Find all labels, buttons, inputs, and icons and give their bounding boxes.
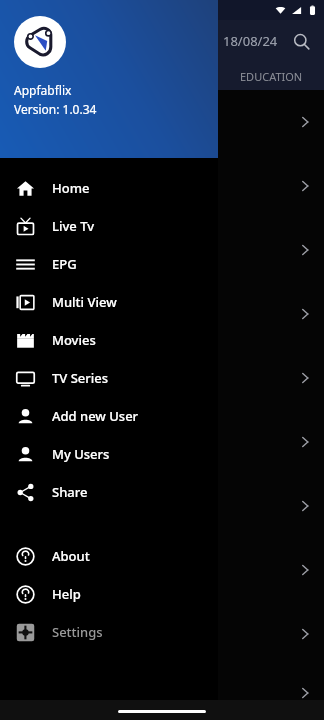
staticText: 3eme Rue TV (1080p) xyxy=(14,169,133,185)
staticText: Multi View xyxy=(52,293,117,311)
staticText: TV Series xyxy=(52,369,109,387)
button[interactable]: EDUCATION xyxy=(232,65,311,88)
staticText: About xyxy=(52,547,90,565)
staticText: BTN Français (576p) [Not 24/7] xyxy=(14,361,186,377)
staticText: 18/08/24 xyxy=(223,32,278,50)
button[interactable]: About xyxy=(0,537,218,575)
staticText: News xyxy=(14,574,40,588)
button[interactable]: For You TV (480p) xyxy=(0,538,324,602)
staticText: Movies xyxy=(52,331,96,349)
button[interactable]: AfricaNews Français (720p) xyxy=(0,282,324,346)
button[interactable]: Sahara TV (720p) [Not 24/7] xyxy=(0,90,324,154)
staticText: Live Tv xyxy=(52,217,95,235)
staticText: Appfabflix xyxy=(14,82,72,98)
staticText: Home xyxy=(52,179,90,197)
button[interactable]: Multi View xyxy=(0,283,218,321)
staticText: GENERAL xyxy=(163,69,212,84)
staticText: For You TV (480p) xyxy=(14,553,112,569)
button[interactable]: GENERAL xyxy=(155,65,220,88)
staticText: News xyxy=(14,254,40,268)
staticText: Franceinfo (720p) xyxy=(14,617,112,633)
staticText: AfricaNews Français (720p) xyxy=(14,297,166,313)
staticText: News xyxy=(14,697,40,711)
staticText: EPG xyxy=(52,255,77,273)
staticText: Settings xyxy=(52,623,103,641)
button[interactable]: Settings xyxy=(0,613,218,651)
staticText: Sahara TV (720p) [Not 24/7] xyxy=(14,105,169,121)
staticText: EDUCATION xyxy=(240,69,303,84)
button[interactable]: Back xyxy=(0,20,42,62)
button[interactable]: Espace TV (1080p) xyxy=(0,474,324,538)
button[interactable]: Africa 24 (540p) xyxy=(0,218,324,282)
button[interactable]: Search xyxy=(278,20,324,62)
staticText: News xyxy=(14,382,40,396)
button[interactable]: 3eme Rue TV (1080p) xyxy=(0,154,324,218)
staticText: News xyxy=(14,638,40,652)
button[interactable]: My Users xyxy=(0,435,218,473)
button[interactable]: Metropolis TV (240p) xyxy=(0,666,324,720)
button[interactable]: Movies xyxy=(0,321,218,359)
staticText: Add new User xyxy=(52,407,139,425)
staticText: Share xyxy=(52,483,88,501)
button[interactable]: Franceinfo (720p) xyxy=(0,602,324,666)
button[interactable]: Home xyxy=(0,169,218,207)
staticText: Africa 24 (540p) xyxy=(14,233,102,249)
button[interactable]: EPG xyxy=(0,245,218,283)
button[interactable]: Live Tv xyxy=(0,207,218,245)
button[interactable]: Help xyxy=(0,575,218,613)
staticText: AppFab Flix xyxy=(81,31,162,51)
staticText: Espace TV (1080p) xyxy=(14,489,116,505)
button[interactable]: TV Series xyxy=(0,359,218,397)
button[interactable]: Bongo Live TV (480p) [Not 24/7] xyxy=(0,410,324,474)
button[interactable]: Share xyxy=(0,473,218,511)
button[interactable]: Add new User xyxy=(0,397,218,435)
staticText: Version: 1.0.34 xyxy=(14,101,97,117)
staticText: News xyxy=(14,446,40,460)
staticText: News xyxy=(14,190,40,204)
button[interactable]: BTN Français (576p) [Not 24/7] xyxy=(0,346,324,410)
staticText: My Users xyxy=(52,445,110,463)
staticText: Help xyxy=(52,585,81,603)
